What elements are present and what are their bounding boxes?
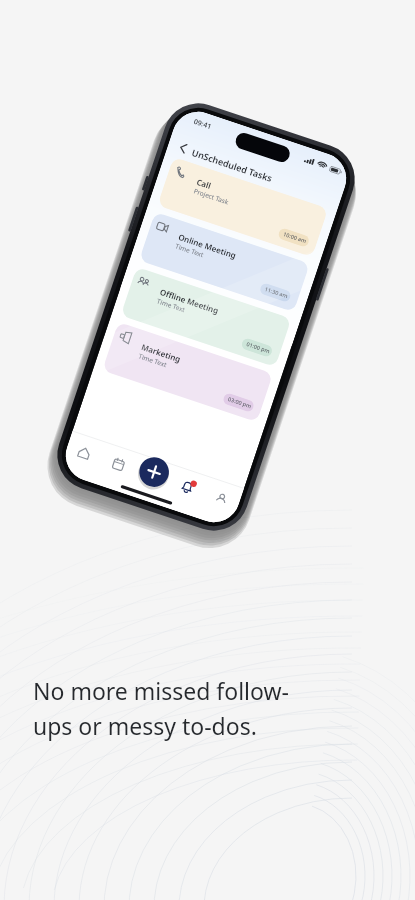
button[interactable]: Home: [79, 439, 106, 466]
button[interactable]: Calendar: [109, 460, 136, 487]
button[interactable]: [158, 223, 322, 271]
button[interactable]: [186, 132, 336, 176]
button[interactable]: Profile: [208, 522, 235, 549]
button[interactable]: Notifications: [173, 503, 200, 530]
button[interactable]: Add task: [150, 457, 180, 487]
button[interactable]: Back: [197, 91, 219, 113]
button[interactable]: [144, 269, 314, 319]
button[interactable]: [172, 177, 330, 223]
